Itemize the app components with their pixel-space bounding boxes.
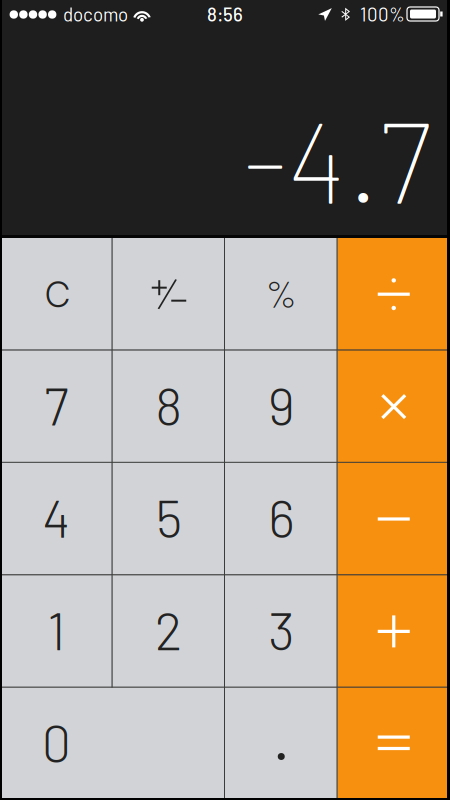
staticText: 6 xyxy=(268,486,294,548)
button[interactable]: multiply xyxy=(337,350,450,463)
button[interactable]: 7 xyxy=(0,350,112,463)
button[interactable]: 3 xyxy=(225,575,337,688)
staticText: 0 xyxy=(42,711,71,773)
staticText: 8:56 xyxy=(207,3,243,25)
staticText: 2 xyxy=(155,598,183,661)
button[interactable]: 8 xyxy=(112,350,225,463)
staticText: 9 xyxy=(268,373,295,436)
button[interactable]: 1 xyxy=(0,575,112,688)
staticText: 7 xyxy=(44,373,68,436)
button[interactable]: plus minus xyxy=(112,238,225,350)
staticText: % xyxy=(265,270,297,315)
button[interactable]: 9 xyxy=(225,350,337,463)
button[interactable]: 2 xyxy=(112,575,225,688)
staticText: 1 xyxy=(47,598,65,661)
button[interactable]: % xyxy=(225,238,337,350)
button[interactable]: decimal point xyxy=(225,688,337,800)
button[interactable]: 4 xyxy=(0,463,112,575)
staticText: -4.7 xyxy=(243,89,432,227)
button[interactable]: C xyxy=(0,238,112,350)
staticText: 8 xyxy=(155,373,182,436)
button[interactable]: 0 xyxy=(0,688,225,800)
staticText: 100% xyxy=(360,3,405,25)
button[interactable]: equals xyxy=(337,688,450,800)
button[interactable]: plus xyxy=(337,575,450,688)
staticText: 4 xyxy=(42,486,70,548)
button[interactable]: 5 xyxy=(112,463,225,575)
staticText: docomo xyxy=(63,3,128,25)
button[interactable]: divide xyxy=(337,238,450,350)
staticText: C xyxy=(45,272,71,316)
button[interactable]: minus xyxy=(337,463,450,575)
staticText: 3 xyxy=(268,598,294,661)
button[interactable]: 6 xyxy=(225,463,337,575)
staticText: 5 xyxy=(156,486,182,548)
